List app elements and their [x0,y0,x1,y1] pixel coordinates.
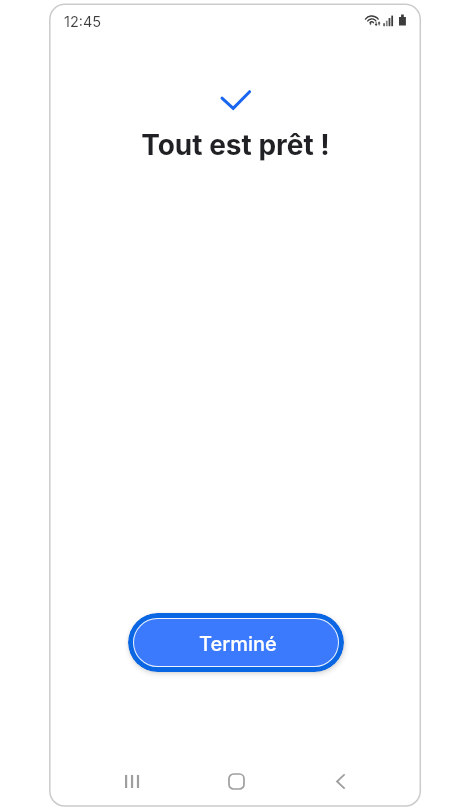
button[interactable]: Recents [108,757,156,805]
staticText: Terminé [199,632,277,656]
staticText: Tout est prêt ! [141,128,330,162]
staticText: 12:45 [64,13,102,31]
button[interactable]: Terminé [134,619,338,666]
button[interactable]: Back [316,757,364,805]
button[interactable]: Home [212,757,260,805]
